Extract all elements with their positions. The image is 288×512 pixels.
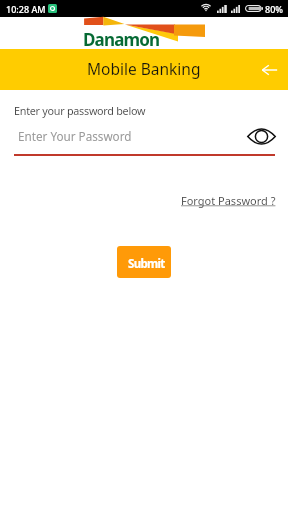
staticText: 10:28 AM — [6, 3, 46, 15]
staticText: Submit — [128, 256, 165, 272]
button[interactable]: Forgot Password ? — [181, 193, 276, 208]
staticText: Mobile Banking — [87, 58, 201, 79]
staticText: Enter Your Password — [18, 128, 132, 144]
button[interactable]: Show password — [243, 125, 279, 148]
button[interactable]: Submit — [117, 246, 171, 278]
button[interactable]: Back — [256, 57, 282, 83]
staticText: 80% — [265, 3, 283, 15]
staticText: Danamon — [83, 28, 160, 51]
staticText: Enter your password below — [14, 103, 146, 118]
